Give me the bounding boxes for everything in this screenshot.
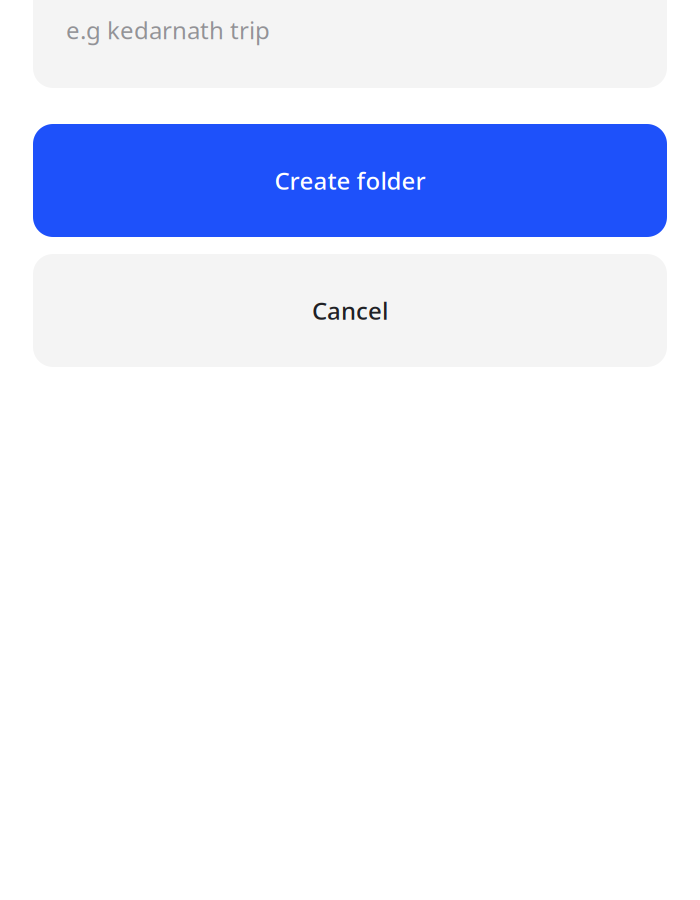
staticText: Create folder bbox=[274, 165, 425, 196]
staticText: e.g kedarnath trip bbox=[66, 14, 270, 46]
button[interactable]: Cancel bbox=[33, 254, 667, 367]
button[interactable]: Folder name bbox=[33, 0, 667, 88]
staticText: Cancel bbox=[312, 295, 388, 326]
button[interactable]: Create folder bbox=[33, 124, 667, 237]
